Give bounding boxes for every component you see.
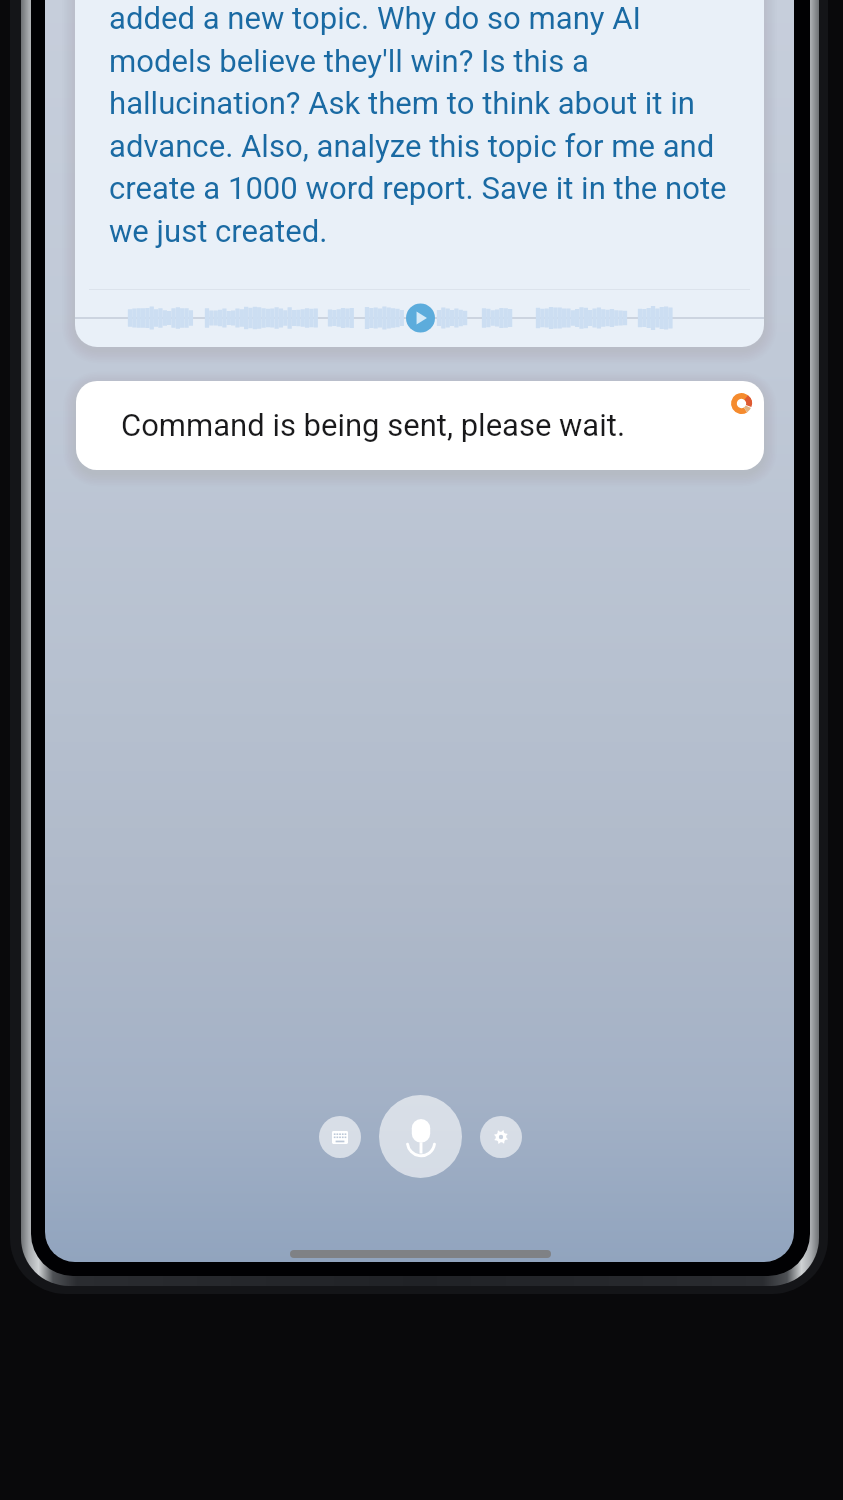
button[interactable]: added a new topic. Why do so many AI [75,0,764,347]
button[interactable]: Command is being sent, please wait. [76,381,764,470]
staticText: create a 1000 word report. Save it in th… [109,170,727,206]
staticText: hallucination? Ask them to think about i… [109,85,695,121]
staticText: models believe they'll win? Is this a [109,43,589,79]
button[interactable]: Play voice message [75,290,764,346]
button[interactable]: Settings [480,1116,522,1158]
staticText: Command is being sent, please wait. [121,407,626,443]
button[interactable]: Keyboard [319,1116,361,1158]
button[interactable]: Microphone [379,1095,462,1178]
staticText: advance. Also, analyze this topic for me… [109,128,715,164]
staticText: added a new topic. Why do so many AI [109,0,642,36]
staticText: we just created. [109,213,328,249]
